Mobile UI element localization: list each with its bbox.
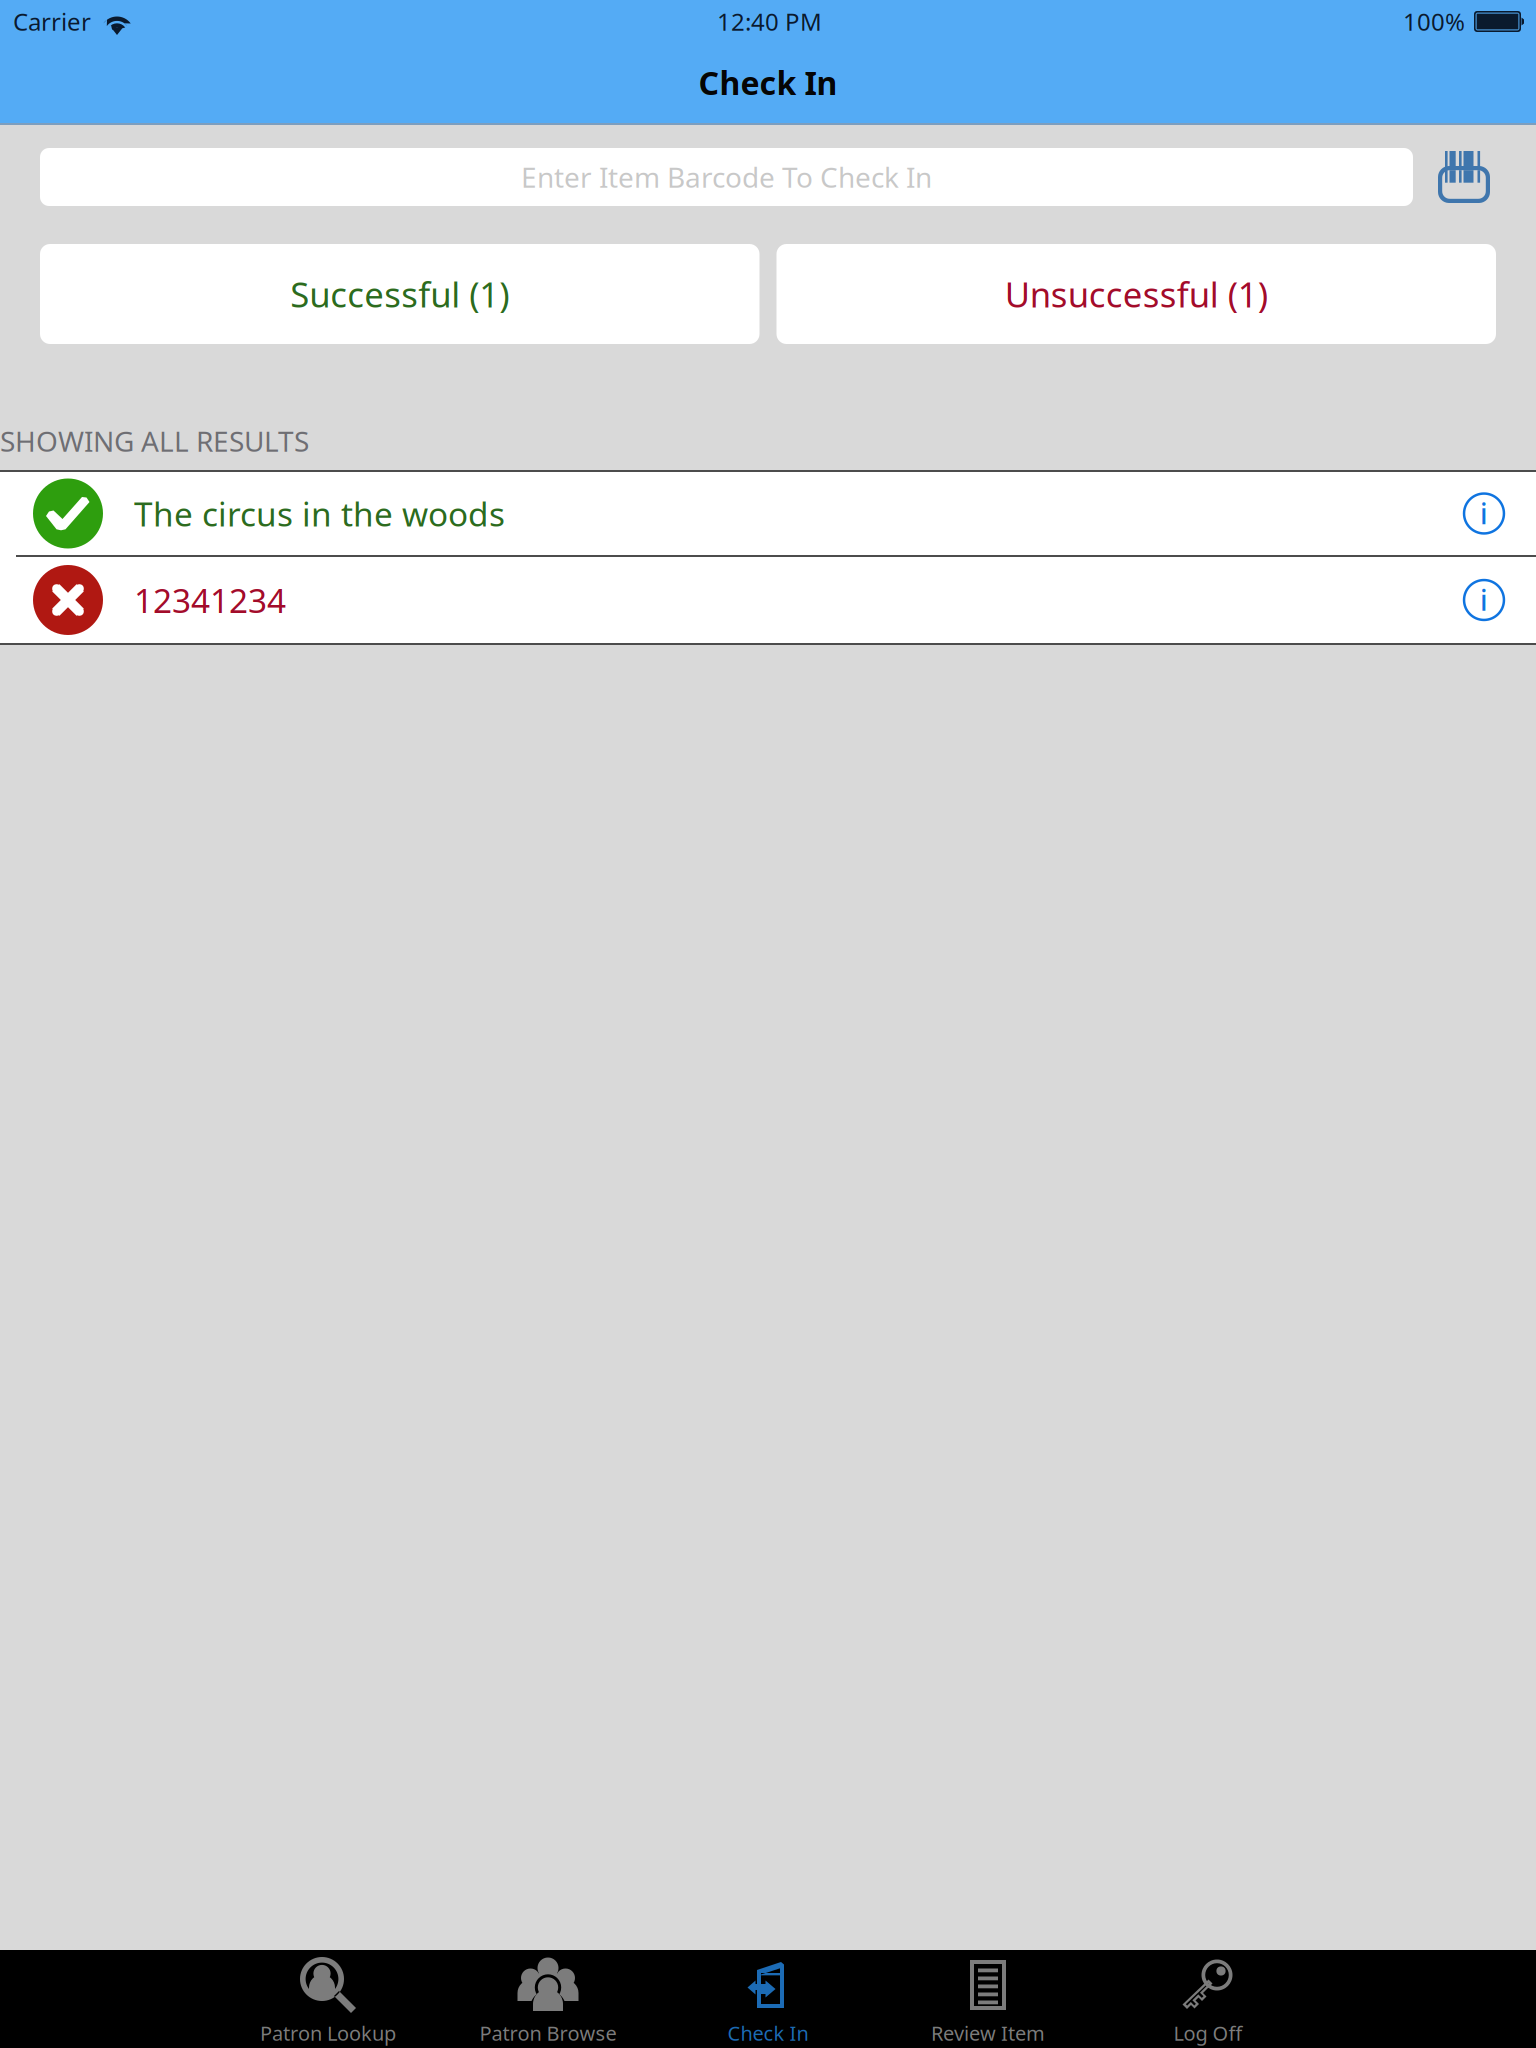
button[interactable]: Log Off xyxy=(1098,1950,1318,2048)
button[interactable]: Patron Browse xyxy=(438,1950,658,2048)
staticText: i xyxy=(1480,495,1488,532)
button[interactable]: Patron Lookup xyxy=(218,1950,438,2048)
button[interactable]: The circus in the woods xyxy=(0,472,1536,555)
staticText: Carrier xyxy=(13,6,91,37)
staticText: Unsuccessful (1) xyxy=(1005,271,1268,317)
staticText: Review Item xyxy=(931,2020,1045,2046)
button[interactable]: Scan barcode xyxy=(1438,151,1490,203)
button[interactable]: Check In xyxy=(658,1950,878,2048)
button[interactable]: 12341234 xyxy=(0,557,1536,643)
staticText: Enter Item Barcode To Check In xyxy=(521,158,932,196)
staticText: Patron Browse xyxy=(479,2020,616,2046)
staticText: Successful (1) xyxy=(290,271,509,317)
staticText: 12:40 PM xyxy=(717,6,822,37)
staticText: Check In xyxy=(727,2020,808,2046)
button[interactable]: Successful (1) xyxy=(40,244,759,344)
staticText: Check In xyxy=(698,61,837,104)
staticText: i xyxy=(1480,581,1488,619)
button[interactable]: Enter Item Barcode To Check In xyxy=(40,148,1413,206)
button[interactable]: Review Item xyxy=(878,1950,1098,2048)
staticText: Log Off xyxy=(1173,2020,1242,2046)
staticText: 100% xyxy=(1403,6,1465,37)
staticText: SHOWING ALL RESULTS xyxy=(0,422,309,460)
button[interactable]: Unsuccessful (1) xyxy=(776,244,1496,344)
staticText: The circus in the woods xyxy=(134,491,505,536)
staticText: Patron Lookup xyxy=(260,2020,396,2046)
staticText: 12341234 xyxy=(134,578,286,622)
